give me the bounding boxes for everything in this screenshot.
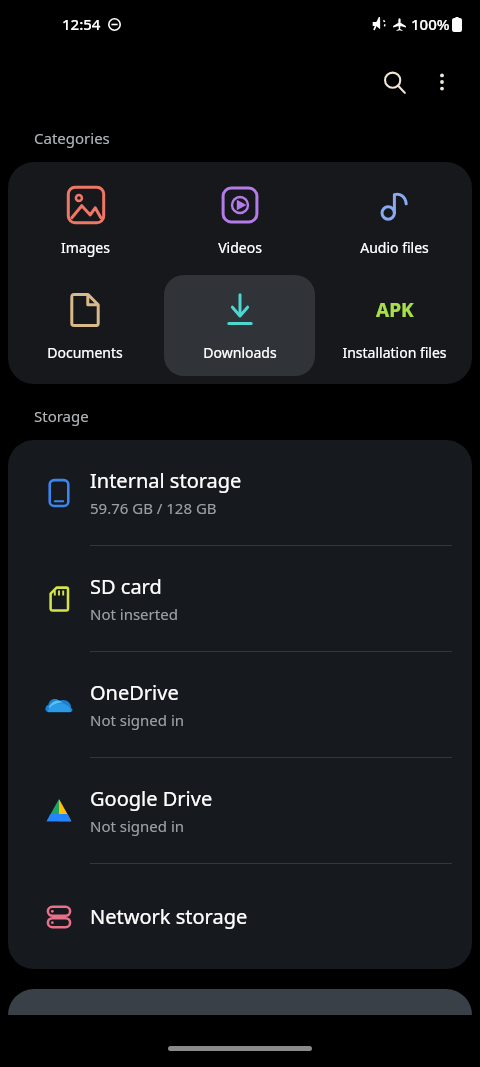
staticText: Categories bbox=[34, 128, 110, 148]
button[interactable]: OneDrive bbox=[8, 652, 472, 757]
staticText: Google Drive bbox=[90, 785, 213, 812]
button[interactable]: Google Drive bbox=[8, 758, 472, 863]
button[interactable]: Internal storage bbox=[8, 440, 472, 545]
staticText: 12:54 bbox=[62, 14, 101, 34]
button[interactable]: SD card bbox=[8, 546, 472, 651]
staticText: Not inserted bbox=[90, 604, 178, 624]
staticText: Installation files bbox=[342, 343, 447, 362]
staticText: Videos bbox=[218, 238, 262, 257]
staticText: Documents bbox=[47, 343, 123, 362]
staticText: Internal storage bbox=[90, 467, 242, 494]
staticText: 100% bbox=[411, 14, 450, 34]
staticText: Images bbox=[61, 238, 110, 257]
button[interactable]: Network storage bbox=[8, 864, 472, 969]
staticText: Audio files bbox=[360, 238, 429, 257]
button[interactable]: Audio files bbox=[319, 170, 470, 271]
button[interactable]: Videos bbox=[164, 170, 315, 271]
button[interactable]: Images bbox=[10, 170, 160, 271]
staticText: Network storage bbox=[90, 903, 248, 930]
button[interactable]: More options bbox=[418, 58, 466, 106]
staticText: Storage bbox=[34, 406, 89, 426]
staticText: Not signed in bbox=[90, 816, 185, 836]
button[interactable]: APK bbox=[319, 275, 470, 376]
button[interactable]: Documents bbox=[10, 275, 160, 376]
staticText: Downloads bbox=[203, 343, 277, 362]
staticText: Not signed in bbox=[90, 710, 185, 730]
staticText: APK bbox=[376, 297, 414, 323]
staticText: 59.76 GB / 128 GB bbox=[90, 498, 217, 518]
staticText: OneDrive bbox=[90, 679, 179, 706]
button[interactable]: Search bbox=[370, 58, 418, 106]
staticText: SD card bbox=[90, 573, 162, 600]
button[interactable]: Downloads bbox=[164, 275, 315, 376]
